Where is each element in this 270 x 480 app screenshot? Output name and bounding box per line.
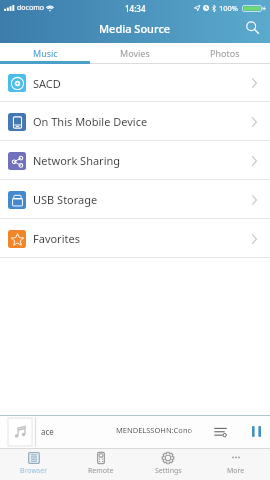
button[interactable]: SACD [0,64,270,102]
button[interactable]: Search [242,17,262,37]
staticText: SACD [33,76,61,91]
staticText: ace [41,426,54,437]
button[interactable]: Network Sharing [0,141,270,180]
button[interactable]: Playback settings [211,422,230,441]
staticText: 100% [219,3,239,13]
button[interactable]: Settings [134,448,202,480]
staticText: Music [33,47,58,59]
staticText: 14:34 [125,3,146,14]
button[interactable]: Photos [180,43,270,64]
staticText: Movies [120,47,150,59]
button[interactable]: USB Storage [0,180,270,219]
button[interactable]: Movies [90,43,180,64]
staticText: On This Mobile Device [33,114,148,129]
staticText: More [227,466,245,476]
staticText: MENDELSSOHN:Conce [116,425,192,435]
staticText: USB Storage [33,192,98,207]
staticText: Photos [210,47,240,59]
staticText: docomo [17,3,44,13]
button[interactable]: Browser [0,448,67,480]
button[interactable]: More [202,448,270,480]
staticText: Network Sharing [33,153,121,168]
staticText: Media Source [99,21,171,36]
button[interactable]: Remote [67,448,134,480]
button[interactable]: Favorites [0,219,270,258]
staticText: Settings [155,466,182,476]
button[interactable]: On This Mobile Device [0,102,270,141]
staticText: Favorites [33,231,80,246]
staticText: Browser [20,466,48,476]
button[interactable]: Music [0,43,90,64]
button[interactable]: Pause [246,421,267,442]
staticText: Remote [88,466,114,476]
